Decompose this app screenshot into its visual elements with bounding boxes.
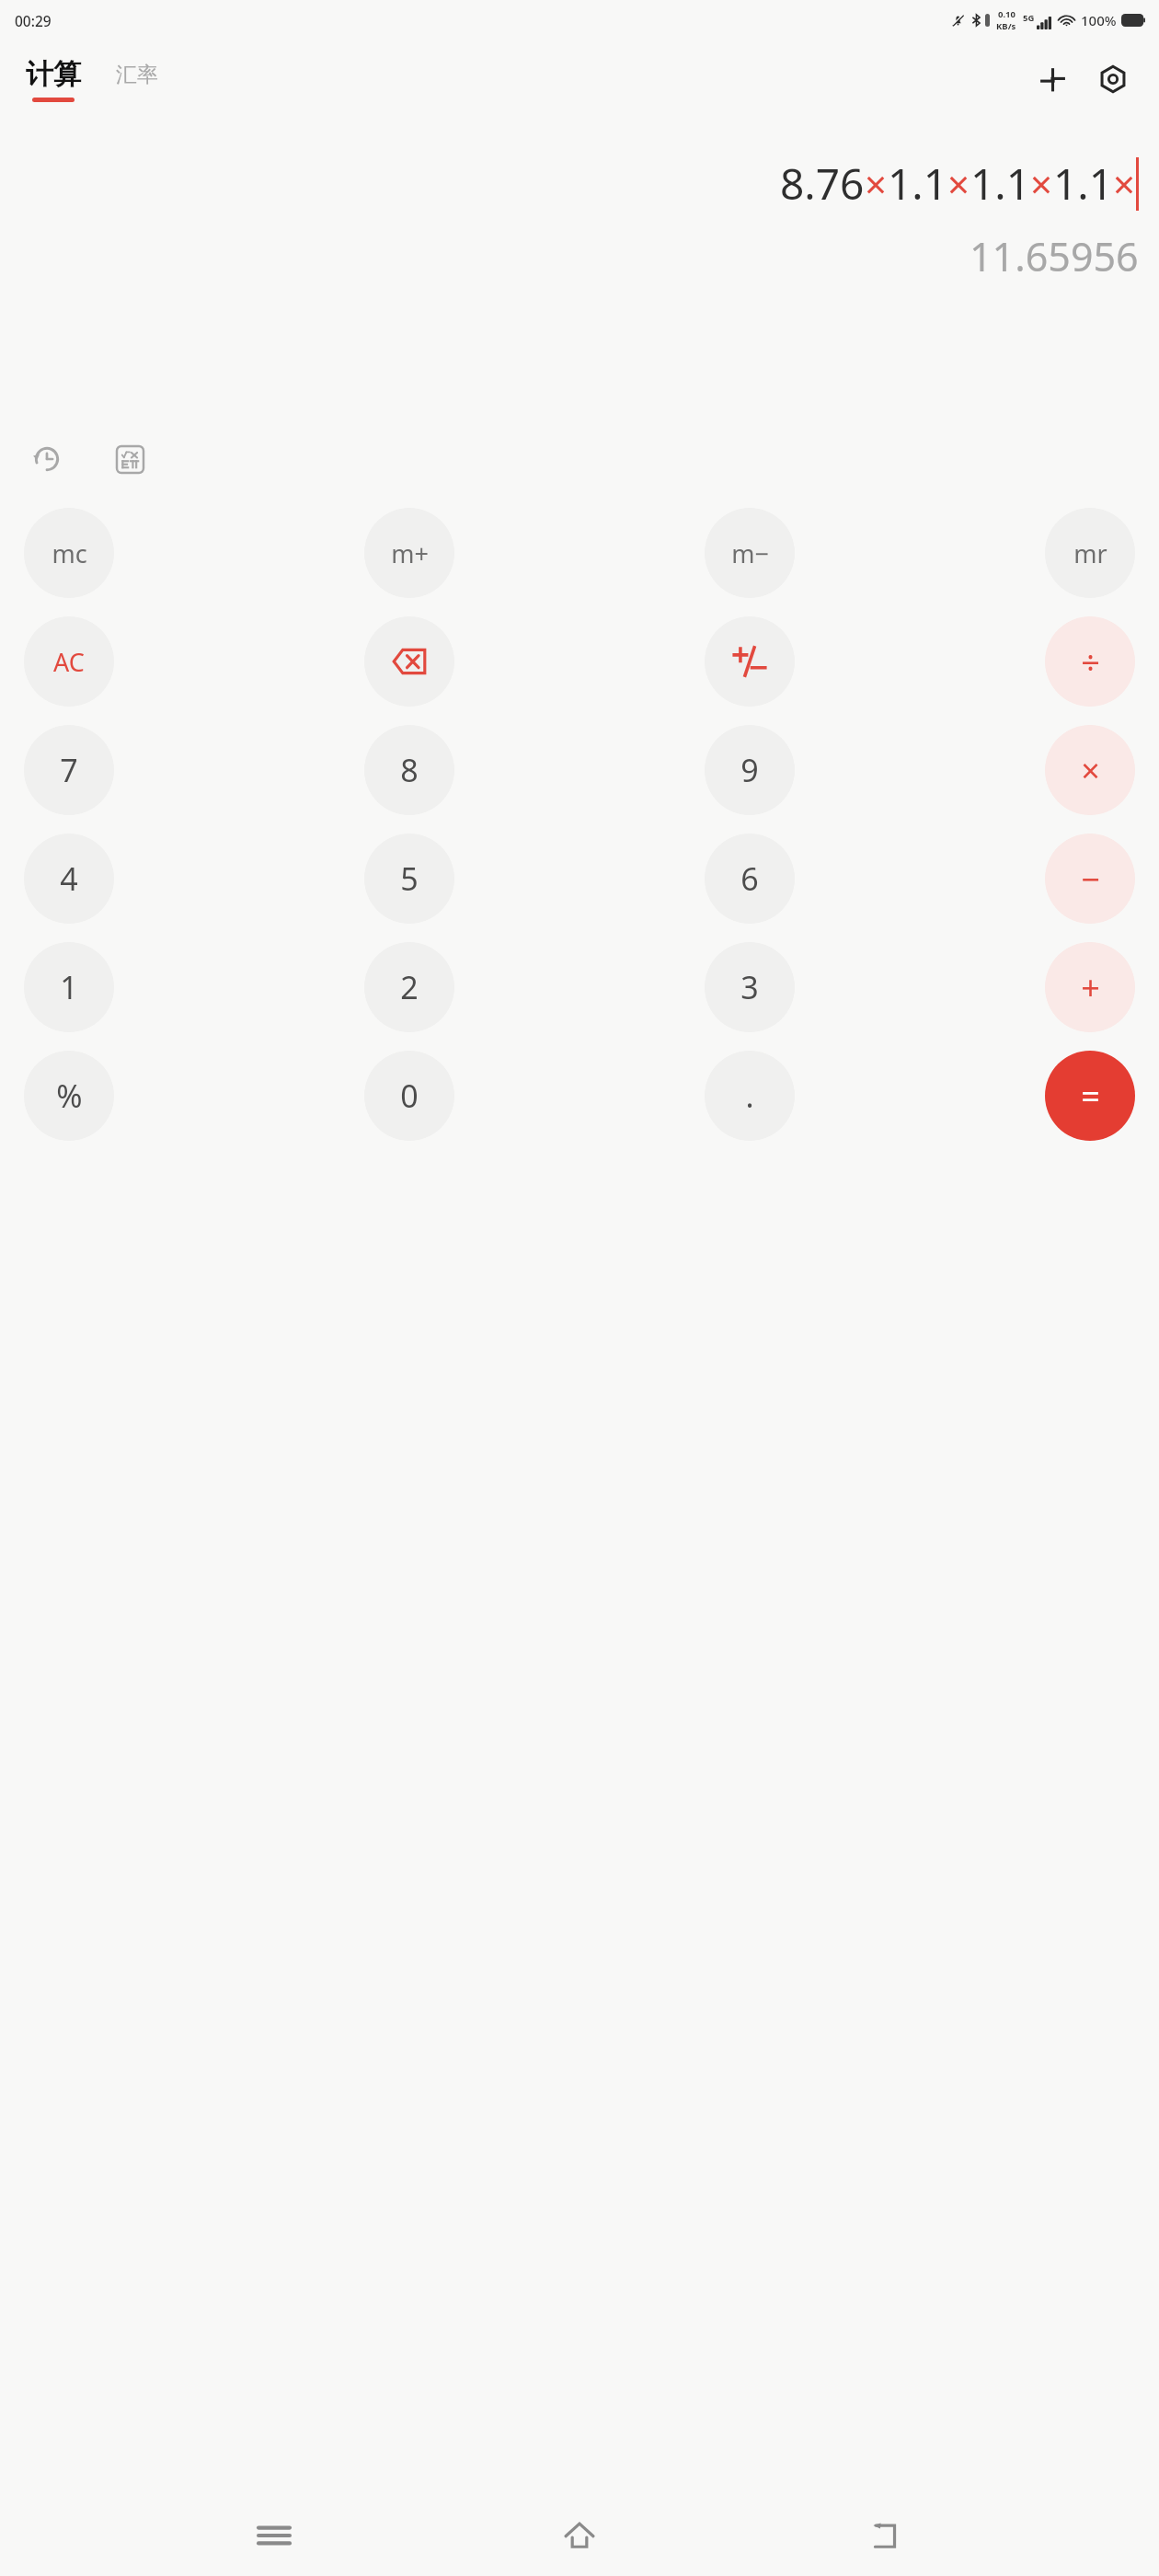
button[interactable]: 5 [364, 834, 454, 924]
staticText: KB/s [996, 20, 1016, 32]
staticText: 00:29 [15, 11, 52, 30]
button[interactable]: m+ [364, 508, 454, 598]
button[interactable]: 9 [705, 725, 795, 815]
staticText: × [1081, 748, 1100, 793]
staticText: 汇率 [116, 62, 158, 88]
staticText: 6 [740, 857, 759, 900]
button[interactable]: 汇率 [109, 58, 166, 102]
button[interactable]: + [1045, 942, 1135, 1032]
staticText: 8 [400, 749, 419, 791]
button[interactable]: mc [24, 508, 114, 598]
button[interactable]: Recent apps [242, 2503, 306, 2568]
staticText: × [1113, 157, 1136, 210]
button[interactable]: Toggle sign [705, 616, 795, 707]
staticText: 9 [740, 749, 759, 791]
button[interactable]: Settings [1089, 55, 1137, 103]
button[interactable]: Back [854, 2503, 918, 2568]
staticText: + [1081, 965, 1100, 1010]
button[interactable]: 7 [24, 725, 114, 815]
button[interactable]: 3 [705, 942, 795, 1032]
staticText: 0.10 [998, 8, 1016, 20]
button[interactable]: Formulas [101, 431, 158, 488]
staticText: − [1081, 857, 1100, 902]
staticText: × [1030, 157, 1053, 210]
staticText: m+ [391, 536, 429, 570]
staticText: 7 [60, 749, 78, 791]
staticText: 5G [1023, 12, 1035, 24]
staticText: 3 [740, 966, 759, 1008]
button[interactable]: 0 [364, 1051, 454, 1141]
button[interactable]: − [1045, 834, 1135, 924]
staticText: ÷ [1081, 639, 1100, 684]
staticText: 计算 [26, 57, 81, 92]
staticText: m− [731, 536, 769, 570]
button[interactable]: 4 [24, 834, 114, 924]
staticText: . [745, 1075, 754, 1117]
staticText: 1.1 [1053, 155, 1113, 213]
staticText: 1.1 [970, 155, 1030, 213]
button[interactable]: 计算 [18, 53, 88, 106]
button[interactable]: 2 [364, 942, 454, 1032]
staticText: × [947, 157, 970, 210]
button[interactable]: ÷ [1045, 616, 1135, 707]
button[interactable]: = [1045, 1051, 1135, 1141]
staticText: mc [52, 536, 87, 570]
staticText: % [56, 1075, 83, 1117]
button[interactable]: Backspace [364, 616, 454, 707]
button[interactable]: . [705, 1051, 795, 1141]
button[interactable]: AC [24, 616, 114, 707]
staticText: AC [53, 645, 85, 679]
staticText: 4 [60, 857, 78, 900]
button[interactable]: Home [547, 2503, 612, 2568]
button[interactable]: % [24, 1051, 114, 1141]
button[interactable]: × [1045, 725, 1135, 815]
staticText: 8.76 [780, 155, 865, 213]
button[interactable]: mr [1045, 508, 1135, 598]
button[interactable]: 8 [364, 725, 454, 815]
staticText: × [865, 157, 888, 210]
staticText: 2 [400, 966, 419, 1008]
staticText: = [1081, 1074, 1100, 1119]
staticText: mr [1073, 536, 1107, 570]
staticText: 0 [400, 1075, 419, 1117]
button[interactable]: History [18, 431, 75, 488]
button[interactable]: 6 [705, 834, 795, 924]
staticText: 11.65956 [970, 229, 1139, 283]
button[interactable]: 1 [24, 942, 114, 1032]
button[interactable]: m− [705, 508, 795, 598]
staticText: 100% [1081, 11, 1117, 29]
staticText: 1.1 [888, 155, 947, 213]
staticText: 5 [400, 857, 419, 900]
button[interactable]: Scientific mode [1028, 55, 1076, 103]
staticText: 1 [60, 966, 78, 1008]
